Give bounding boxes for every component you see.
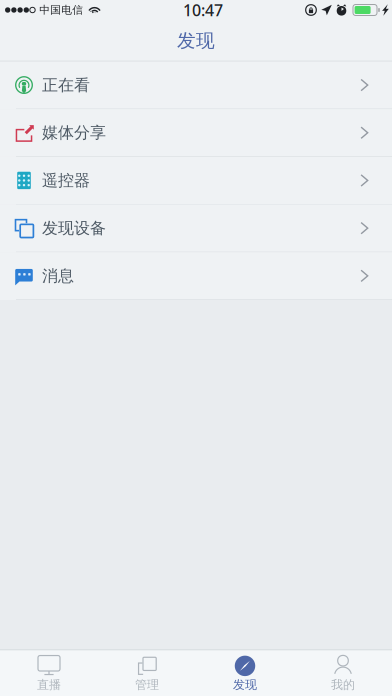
button[interactable]: 媒体分享	[0, 109, 392, 157]
staticText: 发现	[233, 677, 257, 692]
button[interactable]: 发现设备	[0, 205, 392, 252]
staticText: 10:47	[183, 0, 223, 21]
button[interactable]: 直播	[0, 649, 98, 696]
staticText: 我的	[331, 677, 355, 692]
button[interactable]: 发现	[196, 649, 294, 696]
button[interactable]: 遥控器	[0, 157, 392, 205]
button[interactable]: 消息	[0, 252, 392, 300]
button[interactable]: 正在看	[0, 61, 392, 109]
staticText: 直播	[37, 677, 61, 692]
staticText: 发现设备	[42, 218, 106, 238]
staticText: 消息	[42, 266, 74, 286]
staticText: 管理	[135, 677, 159, 692]
button[interactable]: 管理	[98, 649, 196, 696]
staticText: 中国电信	[39, 3, 83, 16]
staticText: 正在看	[42, 75, 90, 95]
button[interactable]: 我的	[294, 649, 392, 696]
staticText: 发现	[177, 29, 215, 52]
staticText: 媒体分享	[42, 123, 106, 143]
staticText: 遥控器	[42, 171, 90, 190]
